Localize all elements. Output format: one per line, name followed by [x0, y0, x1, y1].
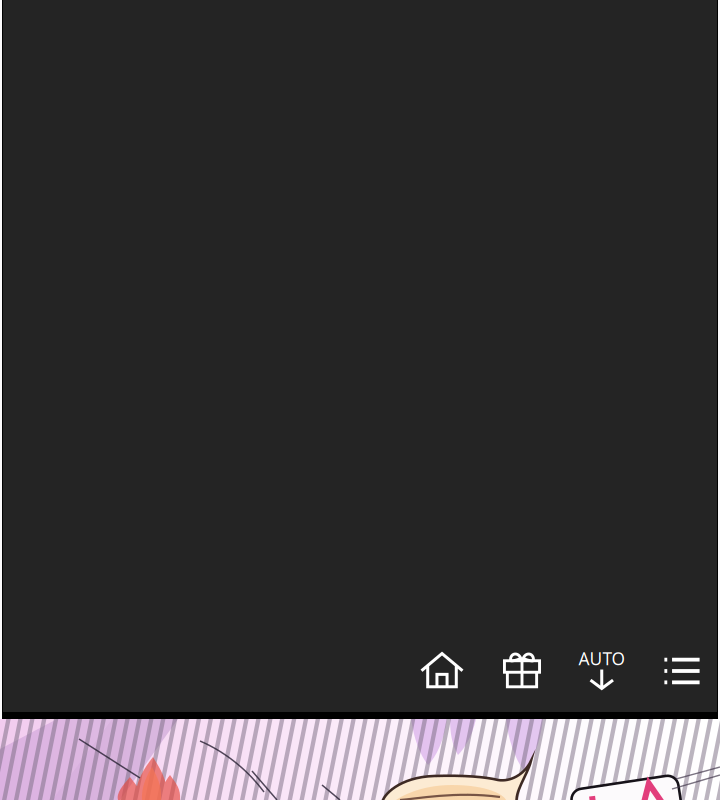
button[interactable]: Gifts [486, 642, 558, 700]
staticText: AUTO [578, 647, 625, 670]
button[interactable]: Episode list [646, 642, 718, 700]
button[interactable]: Home [406, 641, 478, 699]
button[interactable]: Auto scroll [566, 641, 638, 699]
